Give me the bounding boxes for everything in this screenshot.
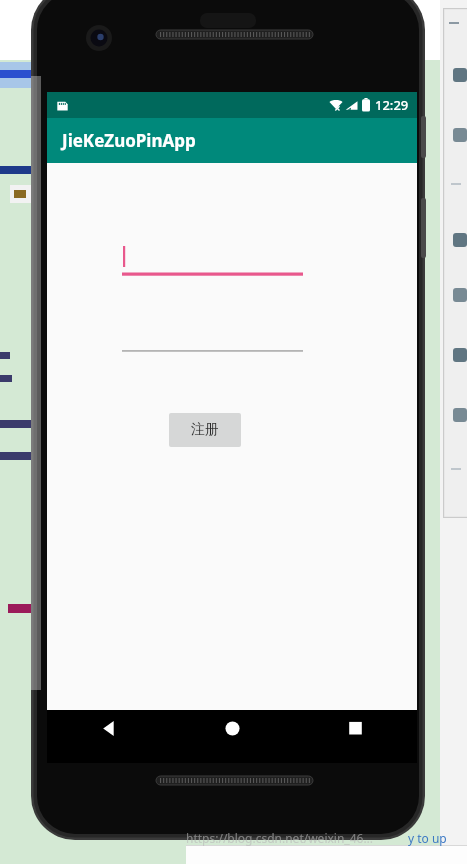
button[interactable]: Password input field <box>122 318 303 353</box>
button[interactable]: Home <box>211 721 253 763</box>
staticText: y to up <box>408 830 447 846</box>
staticText: 注册 <box>191 421 219 439</box>
button[interactable]: Back <box>88 721 130 763</box>
staticText: 12:29 <box>375 96 409 114</box>
button[interactable]: Recent apps <box>334 721 376 763</box>
staticText: https://blog.csdn.net/weixin_46… <box>186 830 373 846</box>
button[interactable]: Username input field <box>122 242 303 277</box>
button[interactable]: 注册 <box>169 413 241 447</box>
staticText: JieKeZuoPinApp <box>62 129 196 152</box>
